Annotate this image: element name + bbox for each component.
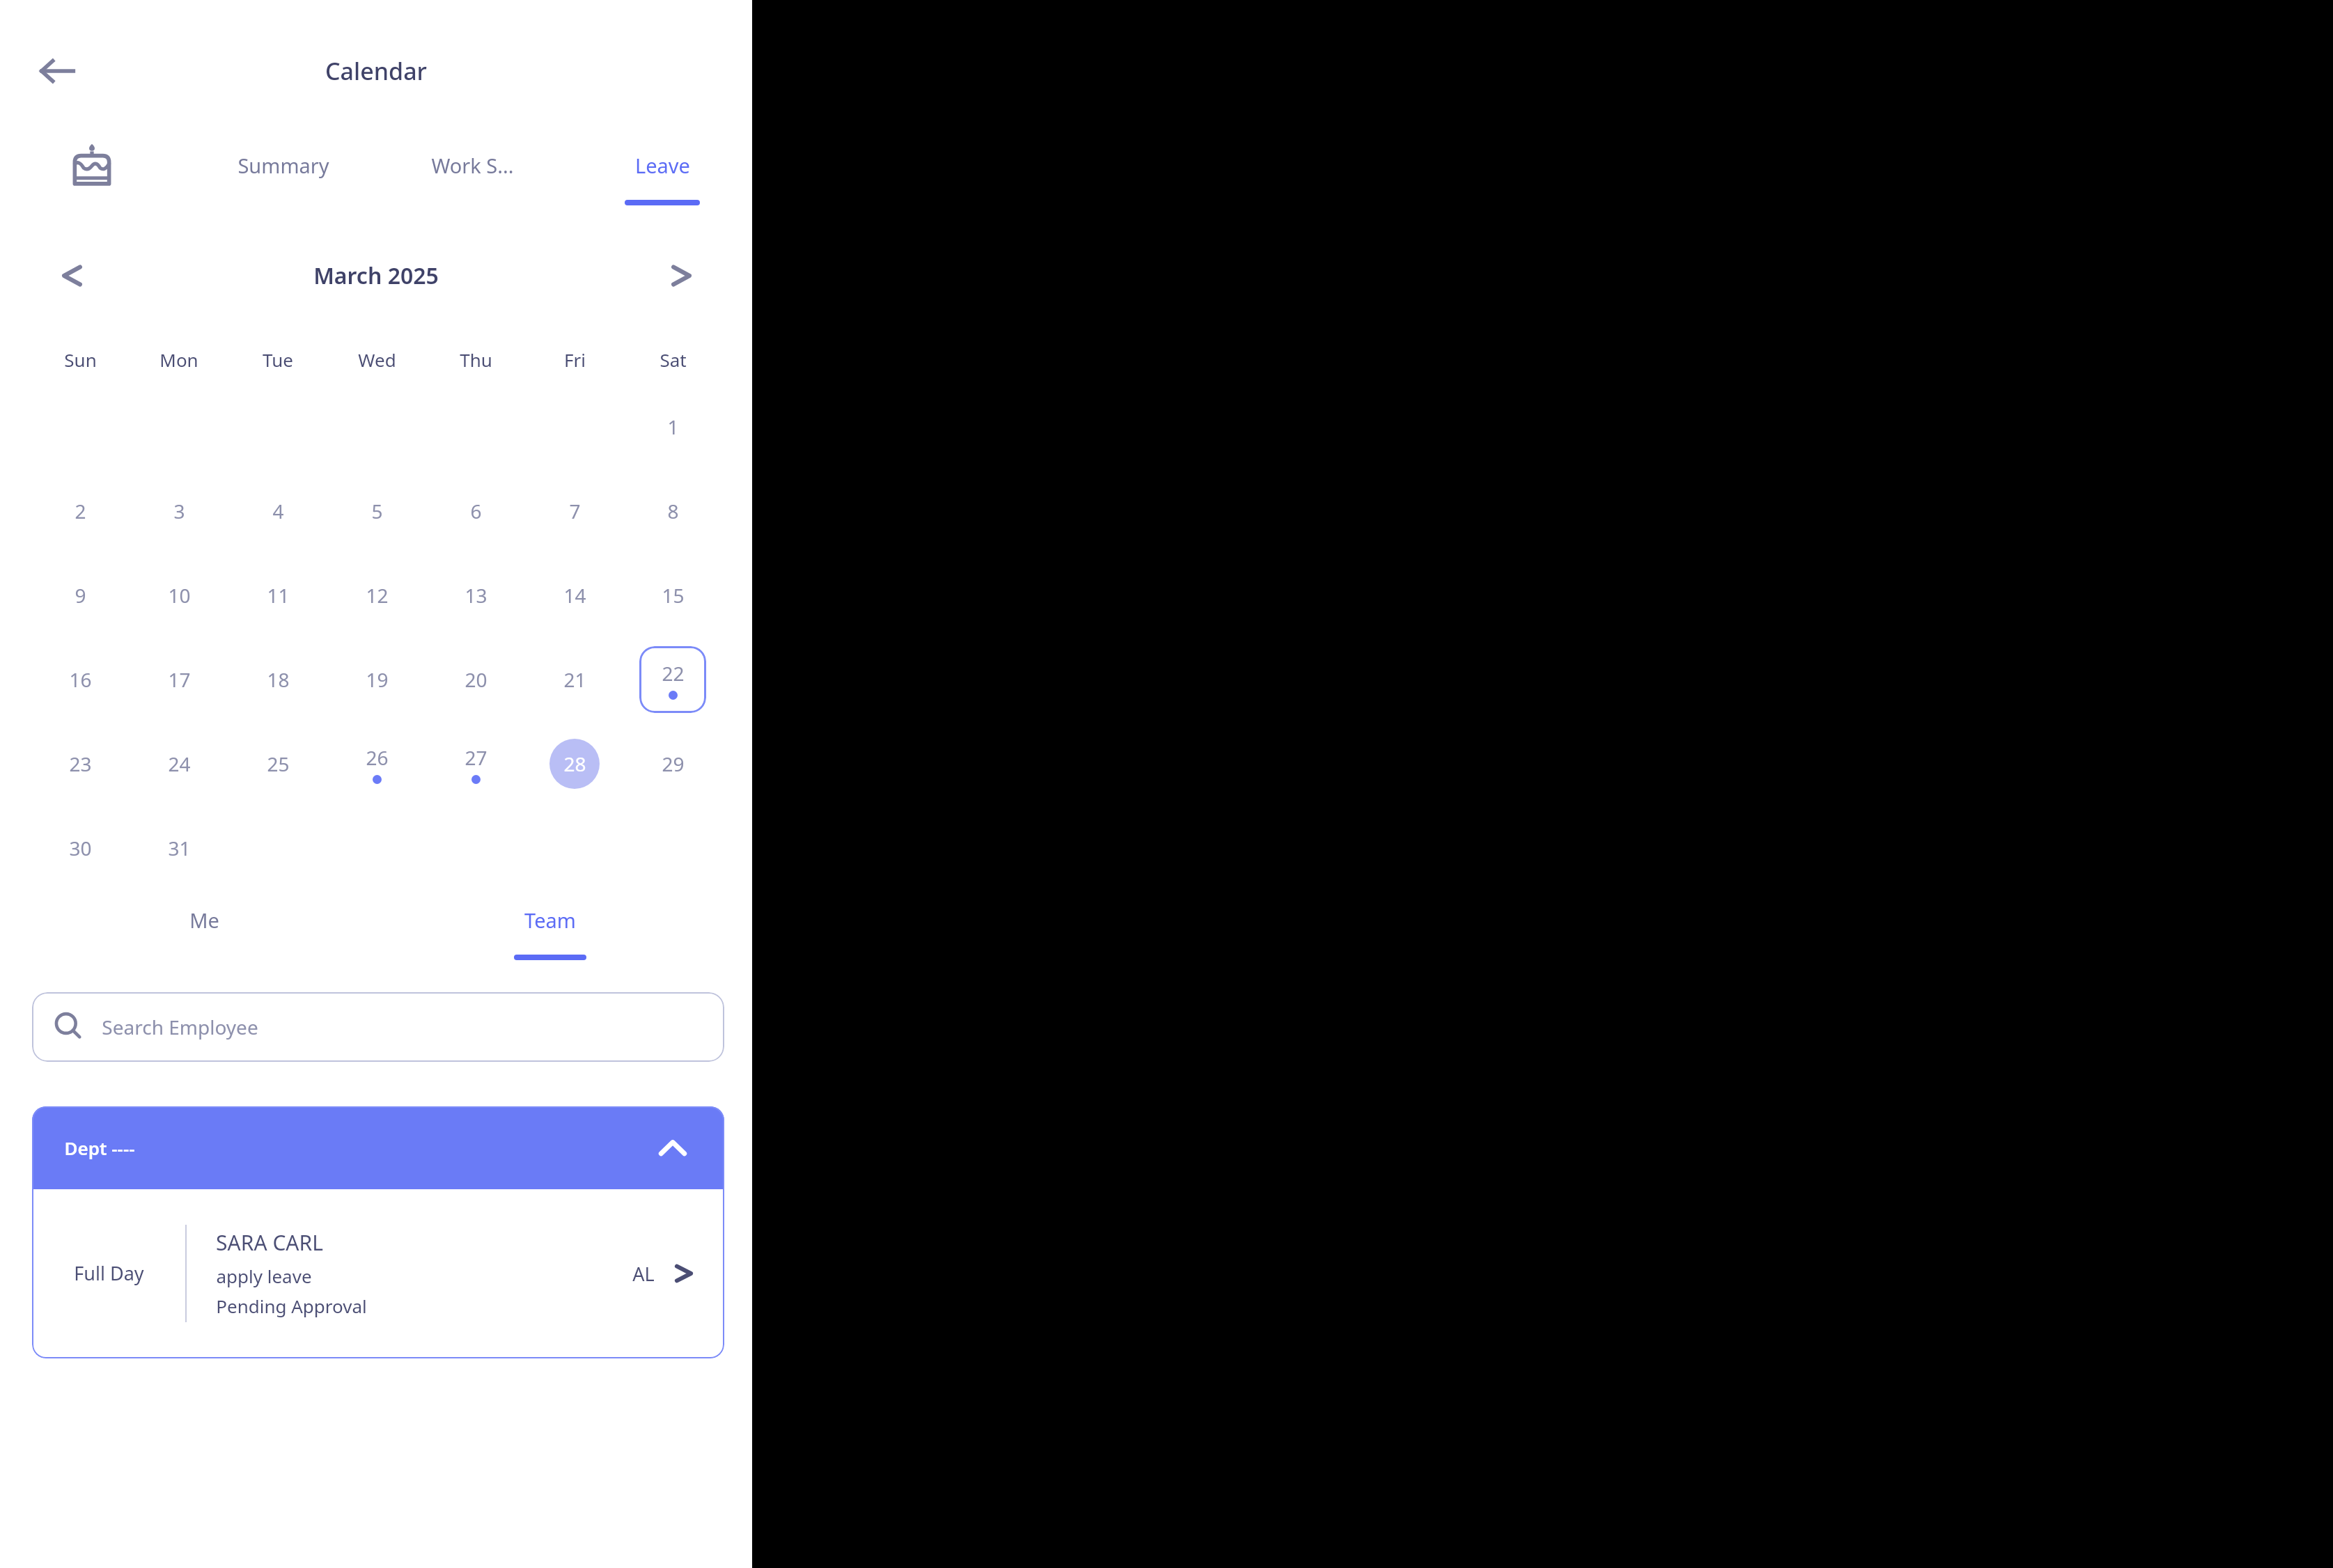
staticText: 18 — [267, 666, 290, 693]
staticText: 9 — [75, 582, 86, 609]
button[interactable]: Back — [29, 43, 85, 99]
button[interactable]: 1 — [638, 392, 708, 462]
button[interactable]: 19 — [342, 645, 412, 714]
staticText: 3 — [173, 498, 185, 524]
button[interactable]: 14 — [540, 560, 609, 630]
staticText: 12 — [366, 582, 389, 609]
button[interactable]: 3 — [144, 476, 214, 546]
button[interactable]: 4 — [243, 476, 313, 546]
staticText: 31 — [168, 835, 191, 861]
staticText: Calendar — [325, 55, 427, 87]
button[interactable]: 18 — [243, 645, 313, 714]
button[interactable]: Summary — [207, 136, 360, 227]
staticText: 1 — [667, 414, 679, 440]
staticText: Summary — [237, 152, 329, 179]
staticText: 6 — [470, 498, 482, 524]
button[interactable]: Full Day — [32, 1189, 724, 1357]
staticText: 19 — [366, 666, 389, 693]
button[interactable]: 30 — [45, 813, 115, 883]
button[interactable]: 11 — [243, 560, 313, 630]
button[interactable]: 12 — [342, 560, 412, 630]
button[interactable]: Previous month — [43, 247, 100, 304]
button[interactable]: Team — [467, 898, 634, 982]
staticText: 26 — [366, 744, 389, 771]
staticText: Full Day — [74, 1260, 144, 1286]
staticText: 24 — [168, 751, 191, 777]
staticText: Sun — [64, 347, 97, 372]
button[interactable]: 8 — [638, 476, 708, 546]
button[interactable]: 16 — [45, 645, 115, 714]
button[interactable]: 7 — [540, 476, 609, 546]
staticText: Fri — [564, 347, 586, 372]
staticText: Search Employee — [102, 1014, 258, 1040]
other: Open leave details — [670, 1260, 698, 1287]
staticText: Thu — [460, 347, 492, 372]
staticText: 14 — [563, 582, 586, 609]
button[interactable]: 22 — [638, 645, 708, 714]
staticText: 29 — [662, 751, 685, 777]
button[interactable]: Dept ---- — [32, 1106, 724, 1189]
button[interactable]: 5 — [342, 476, 412, 546]
staticText: 7 — [569, 498, 581, 524]
staticText: 28 — [563, 751, 586, 777]
button[interactable]: 20 — [441, 645, 510, 714]
staticText: apply leave — [216, 1264, 312, 1288]
staticText: 21 — [563, 666, 586, 693]
button[interactable]: 10 — [144, 560, 214, 630]
button[interactable]: Search Employee — [32, 992, 724, 1062]
staticText: Wed — [358, 347, 396, 372]
staticText: 10 — [168, 582, 191, 609]
button[interactable]: 21 — [540, 645, 609, 714]
staticText: 23 — [69, 751, 92, 777]
staticText: 20 — [465, 666, 487, 693]
button[interactable]: 31 — [144, 813, 214, 883]
button[interactable]: Next month — [653, 247, 710, 304]
staticText: Pending Approval — [216, 1294, 367, 1318]
staticText: Mon — [159, 347, 198, 372]
staticText: 25 — [267, 751, 290, 777]
staticText: Work S... — [431, 152, 514, 179]
button[interactable]: 9 — [45, 560, 115, 630]
button[interactable]: 2 — [45, 476, 115, 546]
button[interactable]: 13 — [441, 560, 510, 630]
button[interactable]: 6 — [441, 476, 510, 546]
button[interactable]: 25 — [243, 729, 313, 799]
staticText: 4 — [272, 498, 284, 524]
staticText: 15 — [662, 582, 685, 609]
button[interactable]: 27 — [441, 729, 510, 799]
staticText: 16 — [69, 666, 92, 693]
staticText: Team — [524, 907, 576, 934]
staticText: 30 — [69, 835, 92, 861]
staticText: Tue — [263, 347, 293, 372]
button[interactable]: 28 — [540, 729, 609, 799]
staticText: March 2025 — [313, 260, 439, 291]
staticText: 5 — [371, 498, 383, 524]
button[interactable]: 23 — [45, 729, 115, 799]
staticText: 8 — [667, 498, 679, 524]
button[interactable]: 24 — [144, 729, 214, 799]
button[interactable]: Me — [120, 898, 288, 982]
button[interactable]: 15 — [638, 560, 708, 630]
staticText: AL — [632, 1261, 655, 1287]
staticText: Dept ---- — [64, 1136, 135, 1160]
button[interactable]: 29 — [638, 729, 708, 799]
button[interactable]: Leave — [586, 136, 739, 227]
staticText: Me — [189, 907, 219, 934]
staticText: Sat — [660, 347, 687, 372]
staticText: SARA CARL — [216, 1228, 323, 1257]
staticText: 11 — [267, 582, 290, 609]
staticText: 22 — [662, 660, 685, 687]
button[interactable]: Birthdays — [64, 136, 120, 192]
staticText: Leave — [635, 152, 690, 179]
other: Collapse department — [653, 1129, 692, 1168]
staticText: 27 — [465, 744, 487, 771]
staticText: 13 — [465, 582, 487, 609]
button[interactable]: Work S... — [396, 136, 549, 227]
button[interactable]: 26 — [342, 729, 412, 799]
staticText: 17 — [168, 666, 191, 693]
button[interactable]: 17 — [144, 645, 214, 714]
staticText: 2 — [75, 498, 86, 524]
